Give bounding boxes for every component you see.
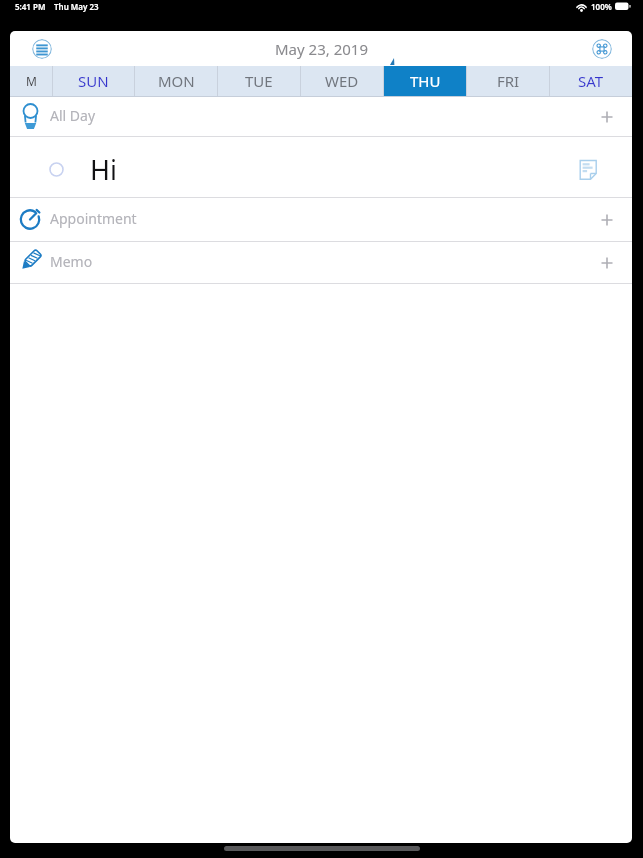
button[interactable]: SUN bbox=[53, 66, 134, 96]
staticText: 100% bbox=[591, 1, 612, 12]
button[interactable]: TUE bbox=[218, 66, 300, 96]
staticText: WED bbox=[325, 71, 359, 91]
staticText: SAT bbox=[578, 71, 604, 91]
staticText: 5:41 PM bbox=[15, 1, 46, 12]
staticText: Memo bbox=[50, 252, 93, 271]
staticText: SUN bbox=[78, 71, 109, 91]
staticText: May 23, 2019 bbox=[275, 39, 368, 59]
button[interactable]: Memo bbox=[10, 242, 632, 283]
staticText: FRI bbox=[497, 71, 520, 91]
button[interactable]: MON bbox=[135, 66, 217, 96]
button[interactable]: WED bbox=[301, 66, 383, 96]
staticText: THU bbox=[410, 71, 441, 91]
staticText: MON bbox=[158, 71, 195, 91]
staticText: All Day bbox=[50, 106, 96, 125]
staticText: M bbox=[26, 73, 37, 89]
staticText: TUE bbox=[245, 71, 273, 91]
staticText: Hi bbox=[90, 151, 117, 188]
button[interactable] bbox=[592, 39, 612, 59]
button[interactable] bbox=[32, 39, 52, 59]
button[interactable]: Hi bbox=[10, 139, 632, 199]
button[interactable]: M bbox=[10, 66, 52, 96]
staticText: Thu May 23 bbox=[54, 1, 99, 12]
button[interactable]: Appointment bbox=[10, 198, 632, 241]
button[interactable]: SAT bbox=[550, 66, 632, 96]
staticText: Appointment bbox=[50, 209, 137, 228]
button[interactable]: THU bbox=[384, 66, 466, 96]
button[interactable]: All Day bbox=[10, 97, 632, 136]
button[interactable]: FRI bbox=[467, 66, 549, 96]
